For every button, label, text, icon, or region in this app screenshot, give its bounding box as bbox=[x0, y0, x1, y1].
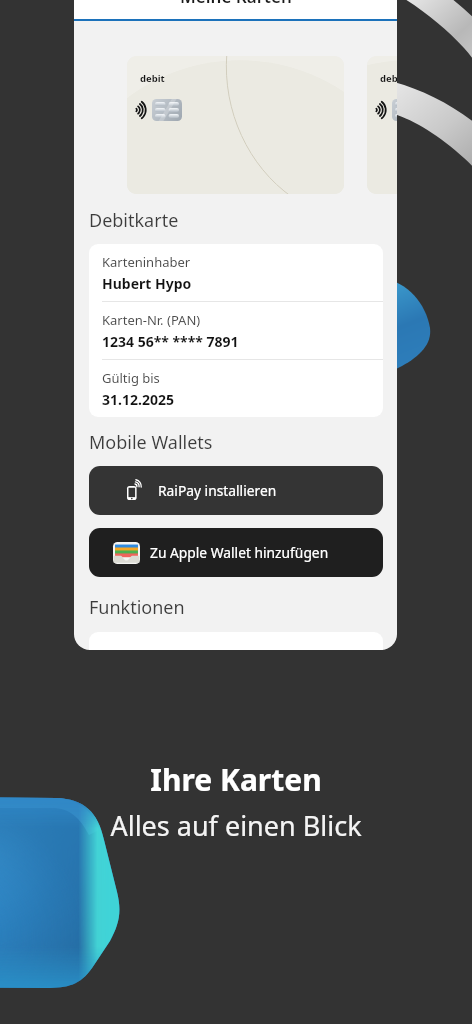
button[interactable]: Karteninhaber bbox=[89, 244, 383, 302]
button[interactable]: RaiPay installieren bbox=[89, 466, 383, 515]
staticText: Funktionen bbox=[89, 595, 185, 620]
staticText: debit bbox=[380, 72, 397, 85]
button[interactable]: Gültig bis bbox=[89, 360, 383, 417]
staticText: Karteninhaber bbox=[102, 253, 191, 271]
button[interactable]: debit bbox=[127, 56, 344, 194]
staticText: debit bbox=[140, 72, 165, 85]
staticText: Hubert Hypo bbox=[102, 274, 192, 293]
staticText: Alles auf einen Blick bbox=[110, 807, 362, 844]
staticText: Ihre Karten bbox=[150, 759, 322, 800]
staticText: RaiPay installieren bbox=[158, 481, 277, 500]
staticText: Karten-Nr. (PAN) bbox=[102, 311, 201, 329]
staticText: Meine Karten bbox=[180, 0, 292, 8]
staticText: Zu Apple Wallet hinzufügen bbox=[150, 543, 329, 562]
staticText: Debitkarte bbox=[89, 208, 179, 233]
staticText: 31.12.2025 bbox=[102, 390, 174, 409]
button[interactable]: Karten-Nr. (PAN) bbox=[89, 302, 383, 360]
button[interactable]: debit bbox=[367, 56, 397, 194]
staticText: 1234 56** **** 7891 bbox=[102, 332, 239, 351]
staticText: Mobile Wallets bbox=[89, 430, 213, 455]
staticText: Gültig bis bbox=[102, 369, 160, 387]
button[interactable]: Zu Apple Wallet hinzufügen bbox=[89, 528, 383, 577]
